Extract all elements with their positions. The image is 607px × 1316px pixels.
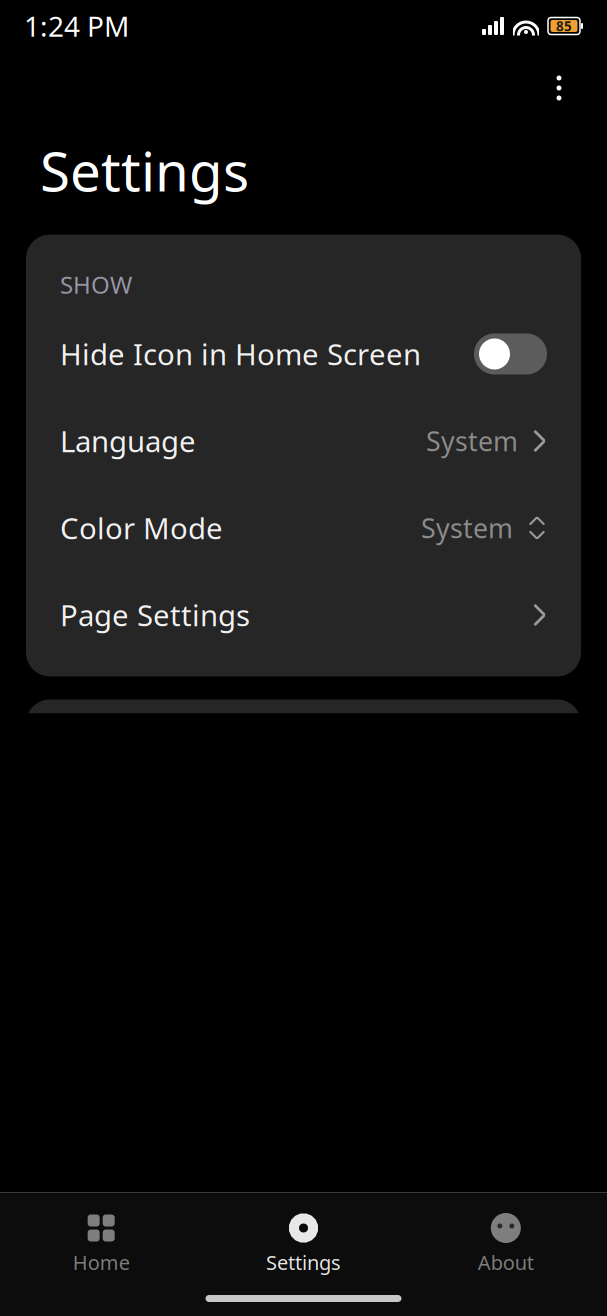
staticText: Language: [60, 421, 196, 460]
button[interactable]: Page Settings: [26, 571, 581, 658]
button[interactable]: More options: [535, 64, 583, 112]
staticText: System: [426, 423, 518, 459]
staticText: Home: [73, 1249, 130, 1276]
staticText: Settings: [266, 1249, 341, 1276]
button[interactable]: Settings: [202, 1205, 405, 1284]
button[interactable]: Hide Icon in Home Screen: [26, 310, 581, 397]
button[interactable]: The current book channel: [26, 1153, 581, 1240]
staticText: The current book channel: [60, 1177, 416, 1216]
staticText: System: [421, 510, 513, 546]
staticText: Reset all settings: [60, 1264, 296, 1303]
button[interactable]: Home: [0, 1205, 202, 1284]
button[interactable]: About: [405, 1205, 607, 1284]
staticText: Settings: [40, 134, 249, 207]
staticText: Page Settings: [60, 595, 250, 634]
staticText: 1:24 PM: [24, 7, 129, 45]
button[interactable]: Reset all settings: [26, 1240, 581, 1316]
staticText: 85: [556, 17, 572, 35]
staticText: Color Mode: [60, 508, 223, 547]
button[interactable]: Color Mode: [26, 484, 581, 571]
staticText: About: [478, 1249, 534, 1276]
staticText: OS1: [462, 1179, 513, 1214]
staticText: SHOW: [60, 269, 132, 300]
button[interactable]: Language: [26, 397, 581, 484]
staticText: Hide Icon in Home Screen: [60, 334, 421, 373]
